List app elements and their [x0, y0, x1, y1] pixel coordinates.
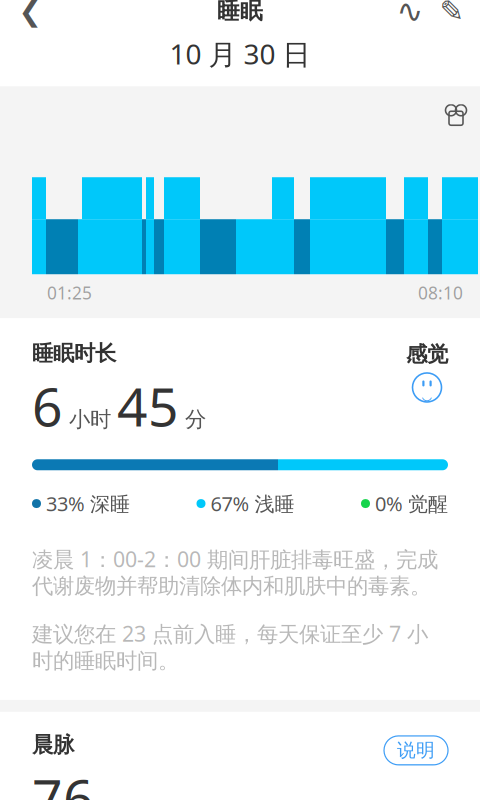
staticText: 10 月 30 日 — [169, 35, 310, 72]
staticText: 小时 — [63, 406, 117, 433]
staticText: 08:10 — [418, 281, 463, 304]
staticText: 说明 — [397, 739, 435, 762]
button[interactable]: 说明 — [384, 736, 448, 765]
staticText: 晨脉 — [32, 732, 74, 758]
staticText: 凌晨 1：00-2：00 期间肝脏排毒旺盛，完成代谢废物并帮助清除体内和肌肤中的… — [32, 545, 438, 599]
staticText: 0% 觉醒 — [375, 490, 448, 517]
staticText: ‿ — [421, 379, 432, 402]
staticText: 睡眠 — [217, 0, 263, 25]
staticText: 睡眠时长 — [32, 340, 116, 366]
button[interactable]: 趋势 — [390, 0, 430, 33]
staticText: 分 — [179, 406, 206, 433]
button[interactable]: 睡眠感觉 — [412, 372, 442, 402]
staticText: ✎ — [439, 0, 464, 28]
staticText: ∿ — [396, 0, 423, 29]
staticText: 01:25 — [47, 281, 92, 304]
button[interactable]: 收藏 — [439, 98, 473, 132]
button[interactable]: 返回 — [6, 0, 54, 33]
staticText: 建议您在 23 点前入睡，每天保证至少 7 小时的睡眠时间。 — [32, 619, 428, 674]
staticText: 感觉 — [406, 341, 448, 367]
button[interactable]: 编辑 — [430, 0, 474, 33]
staticText: 67% 浅睡 — [210, 490, 294, 517]
staticText: 33% 深睡 — [46, 490, 130, 517]
staticText: 45 — [117, 370, 179, 441]
staticText: 76 — [32, 762, 94, 800]
staticText: ❮ — [18, 0, 41, 27]
staticText: 6 — [32, 370, 63, 441]
